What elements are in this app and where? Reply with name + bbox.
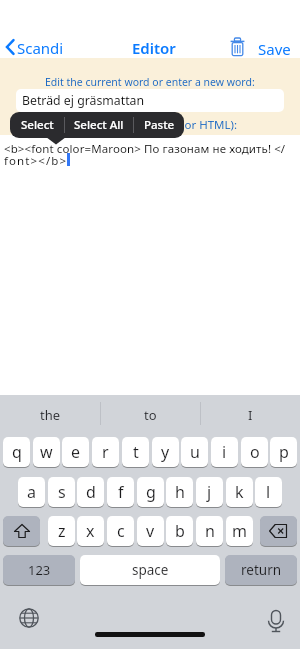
staticText: f bbox=[118, 481, 124, 503]
staticText: Beträd ej gräsmattan bbox=[22, 92, 145, 109]
button[interactable]: v bbox=[137, 516, 164, 546]
staticText: Editor bbox=[132, 38, 176, 58]
staticText: x bbox=[86, 520, 95, 542]
button[interactable]: j bbox=[196, 477, 223, 507]
staticText: b bbox=[175, 520, 185, 542]
staticText: o bbox=[250, 441, 260, 463]
button[interactable]: q bbox=[3, 437, 30, 467]
button[interactable]: Editor bbox=[132, 38, 176, 58]
staticText: Select All bbox=[74, 117, 124, 133]
button[interactable]: s bbox=[48, 477, 75, 507]
button[interactable] bbox=[18, 607, 40, 629]
button[interactable]: to bbox=[100, 396, 200, 434]
staticText: Paste bbox=[144, 117, 175, 133]
button[interactable]: d bbox=[77, 477, 104, 507]
button[interactable]: Scandi bbox=[2, 36, 68, 58]
button[interactable]: I bbox=[200, 396, 300, 434]
staticText: n bbox=[205, 520, 215, 542]
staticText: return bbox=[241, 561, 282, 579]
staticText: j bbox=[207, 481, 212, 503]
staticText: space bbox=[132, 561, 169, 579]
button[interactable]: space bbox=[80, 555, 220, 585]
staticText: g bbox=[146, 481, 156, 503]
staticText: r bbox=[102, 441, 109, 463]
button[interactable]: Save bbox=[256, 38, 294, 58]
staticText: w bbox=[40, 441, 53, 463]
staticText: <b><font color=Maroon> По газонам не ход… bbox=[4, 141, 286, 157]
staticText: l bbox=[266, 481, 271, 503]
staticText: z bbox=[58, 520, 66, 542]
button[interactable]: c bbox=[107, 516, 134, 546]
staticText: u bbox=[190, 441, 200, 463]
button[interactable]: o bbox=[241, 437, 268, 467]
button[interactable]: u bbox=[181, 437, 208, 467]
button[interactable]: Paste bbox=[134, 112, 184, 138]
button[interactable]: return bbox=[225, 555, 297, 585]
staticText: q bbox=[12, 441, 22, 463]
staticText: h bbox=[175, 481, 185, 503]
staticText: y bbox=[161, 441, 170, 463]
button[interactable]: n bbox=[196, 516, 223, 546]
staticText: a bbox=[27, 481, 36, 503]
button[interactable]: r bbox=[92, 437, 119, 467]
staticText: Edit the current word or enter a new wor… bbox=[45, 75, 255, 89]
button[interactable]: k bbox=[226, 477, 253, 507]
staticText: Select bbox=[21, 117, 54, 133]
staticText: s bbox=[58, 481, 66, 503]
staticText: font></b> bbox=[4, 153, 68, 169]
staticText: m bbox=[232, 520, 247, 542]
button[interactable]: Select All bbox=[65, 112, 133, 138]
button[interactable]: b bbox=[166, 516, 193, 546]
staticText: k bbox=[235, 481, 244, 503]
button[interactable]: Select bbox=[10, 112, 64, 138]
button[interactable]: a bbox=[18, 477, 45, 507]
button[interactable]: l bbox=[255, 477, 282, 507]
button[interactable] bbox=[228, 35, 247, 57]
staticText: d bbox=[86, 481, 96, 503]
staticText: v bbox=[146, 520, 155, 542]
button[interactable]: g bbox=[137, 477, 164, 507]
button[interactable]: 123 bbox=[3, 555, 75, 585]
staticText: to bbox=[144, 406, 157, 424]
button[interactable]: y bbox=[152, 437, 179, 467]
button[interactable]: t bbox=[122, 437, 149, 467]
staticText: i bbox=[222, 441, 227, 463]
staticText: c bbox=[117, 520, 125, 542]
button[interactable]: i bbox=[211, 437, 238, 467]
button[interactable]: e bbox=[62, 437, 89, 467]
button[interactable]: x bbox=[77, 516, 104, 546]
button[interactable]: p bbox=[270, 437, 297, 467]
staticText: Save bbox=[258, 39, 291, 59]
button[interactable] bbox=[260, 516, 297, 546]
button[interactable] bbox=[3, 516, 40, 546]
button[interactable]: m bbox=[226, 516, 253, 546]
staticText: p bbox=[279, 441, 289, 463]
button[interactable]: z bbox=[48, 516, 75, 546]
staticText: I bbox=[248, 406, 253, 424]
button[interactable]: w bbox=[33, 437, 60, 467]
staticText: t bbox=[133, 441, 139, 463]
button[interactable]: f bbox=[107, 477, 134, 507]
button[interactable] bbox=[265, 609, 287, 635]
button[interactable]: Beträd ej gräsmattan bbox=[16, 89, 284, 112]
staticText: Scandi bbox=[17, 38, 64, 58]
button[interactable]: the bbox=[0, 396, 100, 434]
button[interactable]: h bbox=[166, 477, 193, 507]
staticText: (or HTML): bbox=[181, 117, 238, 133]
staticText: 123 bbox=[28, 561, 51, 579]
staticText: the bbox=[40, 406, 61, 424]
staticText: e bbox=[71, 441, 81, 463]
